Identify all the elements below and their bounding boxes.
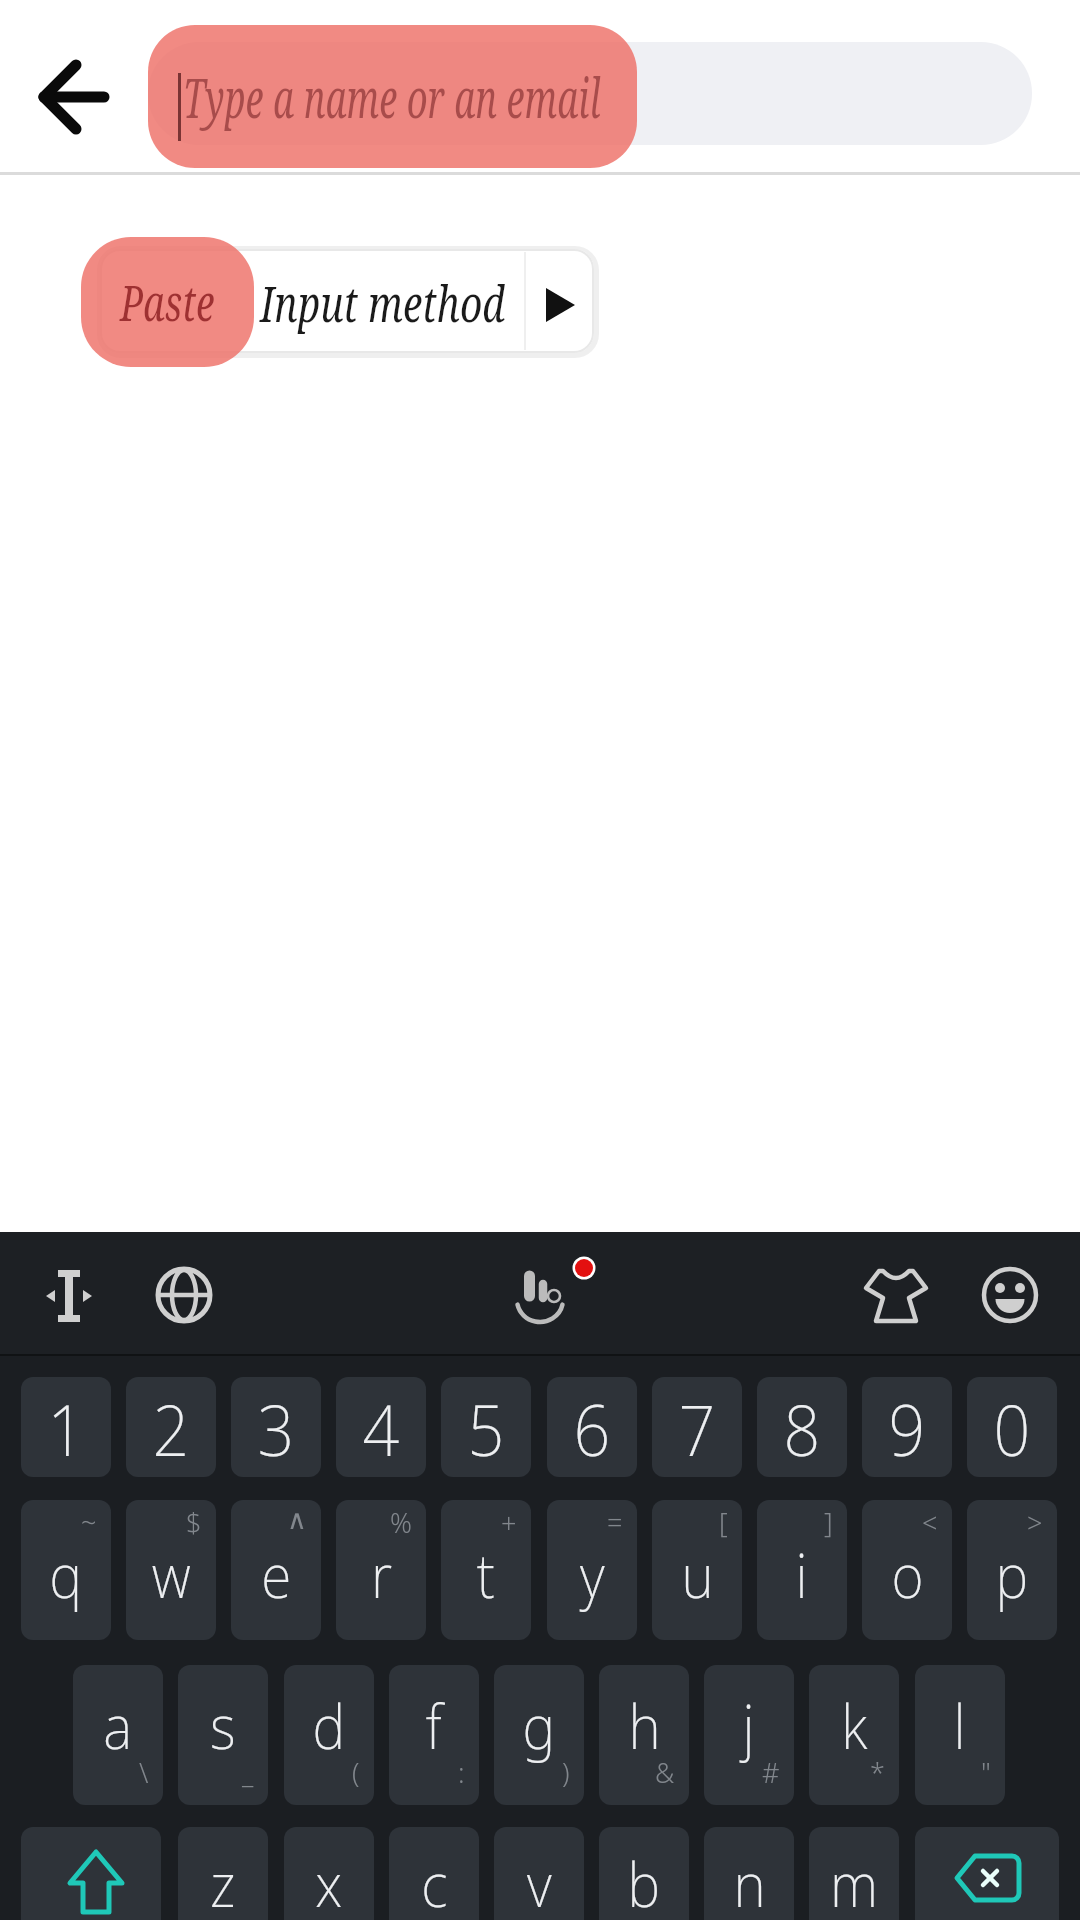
staticText: e [261, 1534, 292, 1616]
button[interactable] [154, 1265, 214, 1325]
staticText: 7 [679, 1381, 715, 1476]
staticText: 5 [468, 1381, 504, 1476]
button[interactable]: 8 [757, 1377, 847, 1477]
button[interactable]: o [862, 1500, 952, 1640]
button[interactable]: 3 [231, 1377, 321, 1477]
button[interactable]: 9 [862, 1377, 952, 1477]
staticText: w [152, 1534, 191, 1616]
button[interactable]: 1 [21, 1377, 111, 1477]
button[interactable] [980, 1265, 1040, 1325]
staticText: 9 [889, 1381, 925, 1476]
staticText: v [527, 1843, 552, 1920]
staticText: f [426, 1685, 442, 1767]
button[interactable]: 5 [441, 1377, 531, 1477]
button[interactable]: s [178, 1665, 268, 1805]
button[interactable]: b [599, 1827, 689, 1920]
staticText: 2 [153, 1381, 189, 1476]
button[interactable] [862, 1263, 930, 1329]
button[interactable]: y [547, 1500, 637, 1640]
button[interactable]: z [178, 1827, 268, 1920]
staticText: 4 [363, 1381, 399, 1476]
button[interactable] [915, 1827, 1059, 1920]
staticText: m [830, 1843, 879, 1920]
button[interactable]: Input method [260, 254, 680, 352]
staticText: [ [719, 1504, 728, 1541]
button[interactable]: d [284, 1665, 374, 1805]
staticText: s [210, 1685, 236, 1767]
button[interactable]: Paste [81, 237, 254, 367]
staticText: u [681, 1534, 714, 1616]
button[interactable]: 0 [967, 1377, 1057, 1477]
staticText: a [103, 1685, 133, 1767]
staticText: Type a name or an email [183, 60, 601, 134]
staticText: $ [186, 1504, 202, 1541]
button[interactable] [36, 1262, 102, 1330]
staticText: \ [139, 1754, 149, 1791]
staticText: & [655, 1754, 675, 1791]
button[interactable]: p [967, 1500, 1057, 1640]
staticText: % [390, 1504, 412, 1541]
button[interactable] [148, 42, 1032, 145]
button[interactable]: i [757, 1500, 847, 1640]
button[interactable]: c [389, 1827, 479, 1920]
button[interactable]: j [704, 1665, 794, 1805]
button[interactable]: a [73, 1665, 163, 1805]
button[interactable]: h [599, 1665, 689, 1805]
staticText: " [981, 1754, 991, 1791]
button[interactable]: f [389, 1665, 479, 1805]
button[interactable]: v [494, 1827, 584, 1920]
staticText: + [501, 1504, 517, 1541]
button[interactable]: 2 [126, 1377, 216, 1477]
staticText: k [841, 1685, 868, 1767]
staticText: x [315, 1843, 343, 1920]
staticText: ] [824, 1504, 833, 1541]
staticText: n [733, 1843, 766, 1920]
button[interactable]: x [284, 1827, 374, 1920]
staticText: ∧ [287, 1504, 307, 1535]
staticText: 0 [994, 1381, 1030, 1476]
staticText: ) [562, 1754, 570, 1791]
button[interactable]: k [809, 1665, 899, 1805]
staticText: 8 [784, 1381, 820, 1476]
staticText: # [762, 1754, 780, 1791]
staticText: i [796, 1534, 808, 1616]
button[interactable]: l [915, 1665, 1005, 1805]
button[interactable]: 6 [547, 1377, 637, 1477]
button[interactable]: r [336, 1500, 426, 1640]
staticText: p [995, 1534, 1028, 1616]
button[interactable] [21, 1827, 161, 1920]
staticText: c [421, 1843, 448, 1920]
staticText: z [210, 1843, 236, 1920]
button[interactable] [28, 50, 120, 142]
staticText: 3 [258, 1381, 294, 1476]
staticText: ( [352, 1754, 360, 1791]
staticText: * [870, 1754, 885, 1791]
staticText: 6 [574, 1381, 610, 1476]
button[interactable]: 7 [652, 1377, 742, 1477]
staticText: y [580, 1534, 605, 1616]
button[interactable]: m [809, 1827, 899, 1920]
button[interactable]: 4 [336, 1377, 426, 1477]
staticText: < [922, 1504, 938, 1541]
button[interactable]: e [231, 1500, 321, 1640]
staticText: t [477, 1534, 495, 1616]
button[interactable]: t [441, 1500, 531, 1640]
button[interactable]: n [704, 1827, 794, 1920]
staticText: q [49, 1534, 82, 1616]
button[interactable] [500, 1248, 610, 1338]
staticText: g [522, 1685, 555, 1767]
staticText: > [1027, 1504, 1043, 1541]
button[interactable]: u [652, 1500, 742, 1640]
staticText: Paste [120, 268, 215, 336]
staticText: = [607, 1504, 623, 1541]
button[interactable]: q [21, 1500, 111, 1640]
staticText: j [743, 1685, 755, 1767]
button[interactable]: w [126, 1500, 216, 1640]
staticText: : [458, 1754, 465, 1791]
staticText: 1 [48, 1381, 84, 1476]
staticText: o [891, 1534, 924, 1616]
staticText: d [312, 1685, 345, 1767]
staticText: h [628, 1685, 661, 1767]
staticText: ~ [81, 1504, 97, 1541]
button[interactable]: g [494, 1665, 584, 1805]
